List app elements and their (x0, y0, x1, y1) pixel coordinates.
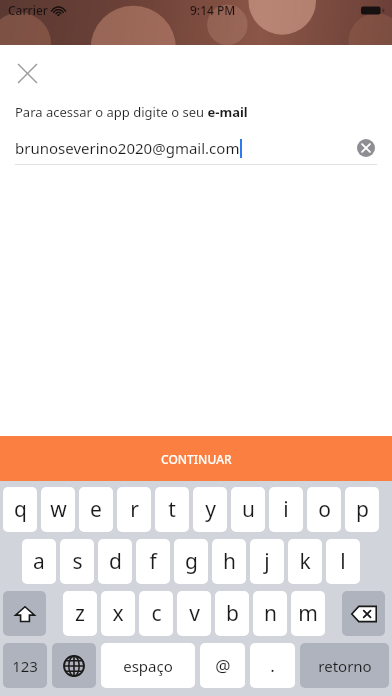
staticText: . (270, 654, 275, 677)
staticText: b (226, 599, 239, 628)
button[interactable]: c (139, 591, 173, 636)
staticText: g (185, 547, 198, 576)
button[interactable]: m (291, 591, 325, 636)
staticText: brunoseverino2020@gmail.com (15, 138, 240, 158)
staticText: 123 (12, 656, 38, 676)
staticText: t (168, 495, 176, 524)
button[interactable]: k (288, 539, 322, 584)
staticText: y (205, 495, 216, 524)
button[interactable]: Limpar texto (355, 137, 377, 159)
staticText: f (149, 547, 157, 576)
staticText: z (75, 599, 85, 628)
staticText: e (90, 495, 102, 524)
button[interactable]: CONTINUAR (0, 436, 392, 481)
staticText: v (189, 599, 200, 628)
button[interactable]: g (174, 539, 208, 584)
staticText: espaço (123, 656, 173, 676)
button[interactable]: @ (200, 643, 245, 688)
button[interactable]: w (41, 487, 75, 532)
staticText: i (283, 495, 289, 524)
staticText: Para acessar o app digite o seu e-mail (15, 103, 248, 121)
button[interactable]: Apagar (342, 591, 385, 636)
button[interactable]: retorno (300, 643, 389, 688)
button[interactable]: a (22, 539, 56, 584)
button[interactable]: d (98, 539, 132, 584)
staticText: p (356, 495, 369, 524)
button[interactable]: o (307, 487, 341, 532)
staticText: l (340, 547, 346, 576)
staticText: o (318, 495, 331, 524)
button[interactable]: q (3, 487, 37, 532)
staticText: w (50, 495, 67, 524)
button[interactable]: t (155, 487, 189, 532)
button[interactable]: Shift (3, 591, 46, 636)
staticText: @ (215, 654, 231, 677)
button[interactable]: Mudar teclado (52, 643, 96, 688)
button[interactable]: brunoseverino2020@gmail.com (15, 132, 377, 164)
staticText: Carrier (8, 2, 48, 18)
staticText: n (264, 599, 277, 628)
staticText: r (130, 495, 139, 524)
button[interactable]: p (345, 487, 379, 532)
staticText: 9:14 PM (190, 2, 236, 18)
button[interactable]: espaço (101, 643, 195, 688)
staticText: c (151, 599, 162, 628)
staticText: k (299, 547, 311, 576)
staticText: s (72, 547, 83, 576)
button[interactable]: z (63, 591, 97, 636)
button[interactable]: . (250, 643, 295, 688)
button[interactable]: s (60, 539, 94, 584)
staticText: CONTINUAR (161, 451, 232, 467)
staticText: j (264, 547, 270, 576)
button[interactable]: y (193, 487, 227, 532)
button[interactable]: b (215, 591, 249, 636)
staticText: d (109, 547, 122, 576)
staticText: u (242, 495, 255, 524)
button[interactable]: l (326, 539, 360, 584)
staticText: m (298, 599, 318, 628)
button[interactable]: x (101, 591, 135, 636)
button[interactable]: e (79, 487, 113, 532)
button[interactable]: r (117, 487, 151, 532)
staticText: h (223, 547, 236, 576)
staticText: q (14, 495, 27, 524)
button[interactable]: j (250, 539, 284, 584)
staticText: retorno (318, 656, 372, 676)
button[interactable]: f (136, 539, 170, 584)
button[interactable]: i (269, 487, 303, 532)
button[interactable]: u (231, 487, 265, 532)
button[interactable]: n (253, 591, 287, 636)
button[interactable]: h (212, 539, 246, 584)
button[interactable]: Fechar (6, 52, 48, 94)
staticText: x (112, 599, 124, 628)
staticText: a (33, 547, 45, 576)
button[interactable]: v (177, 591, 211, 636)
button[interactable]: 123 (3, 643, 47, 688)
